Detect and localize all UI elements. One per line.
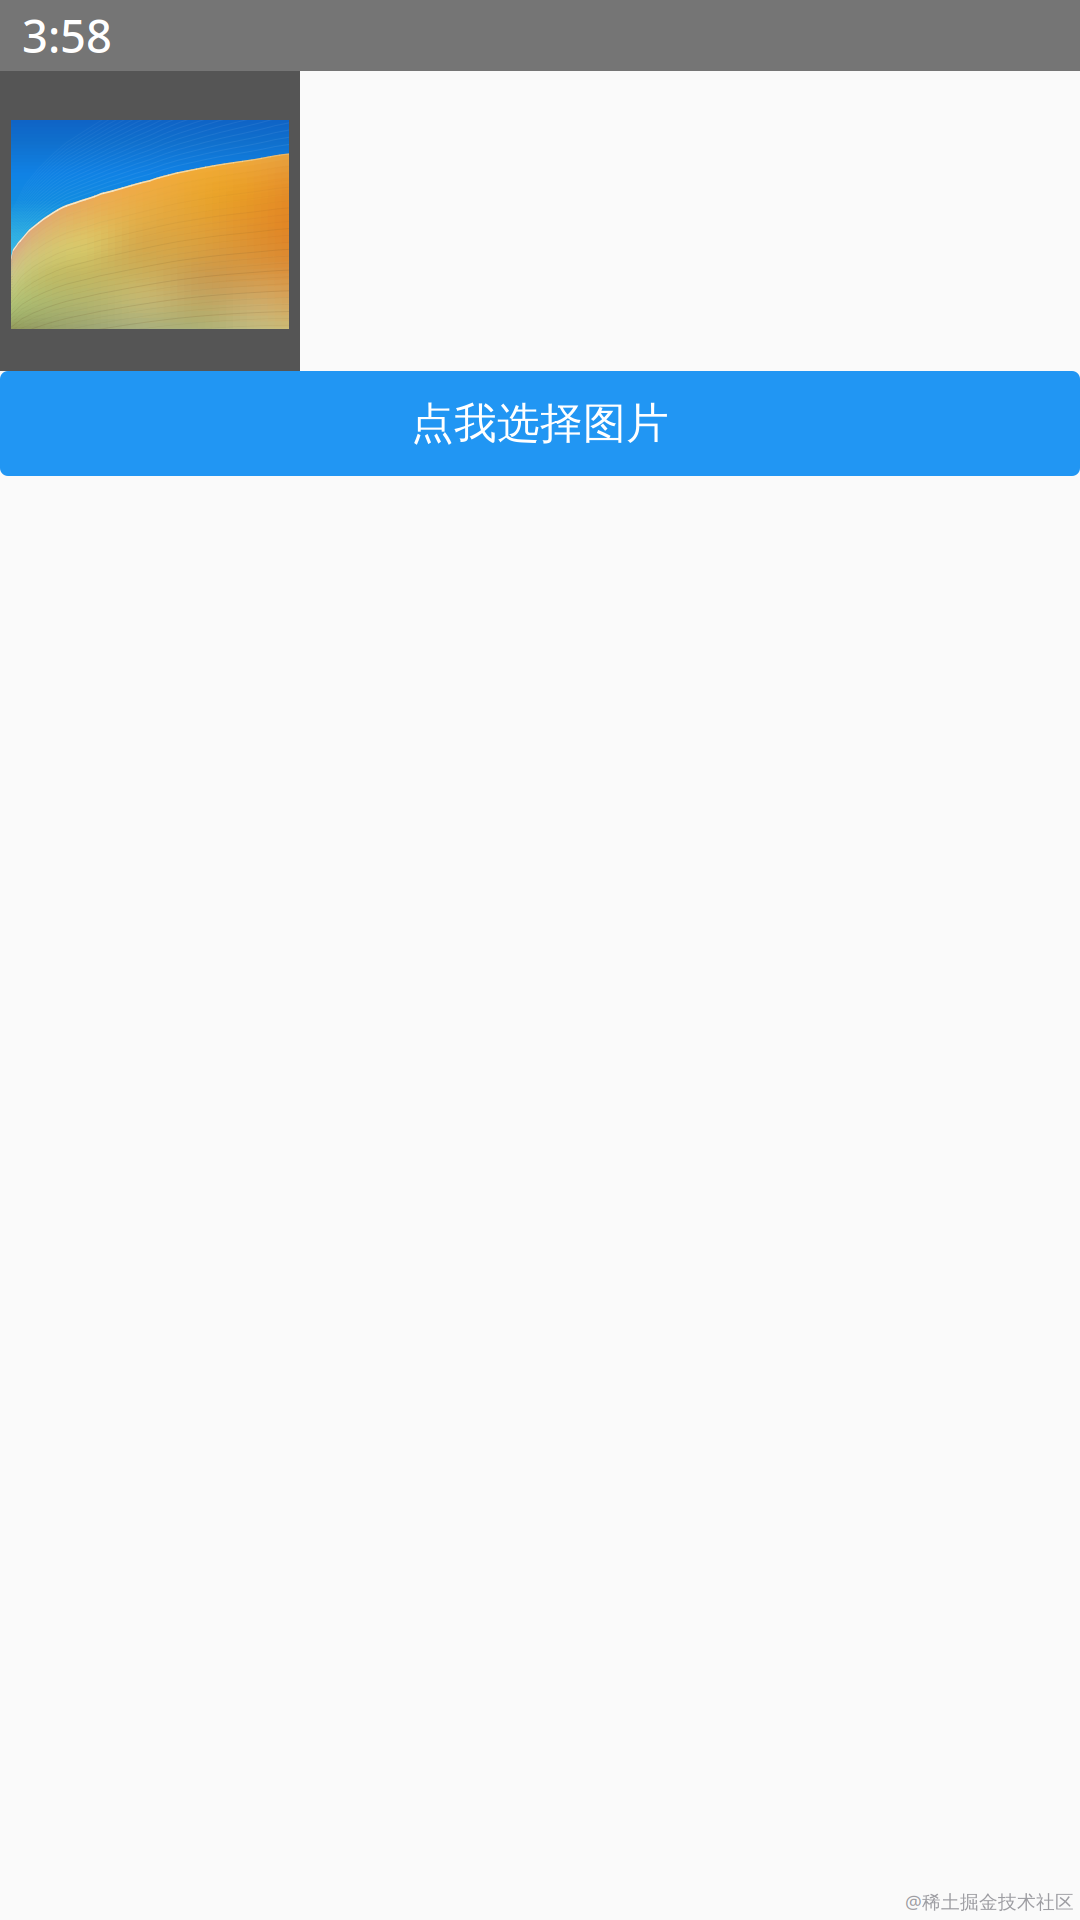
staticText: 3:58: [22, 5, 112, 66]
button[interactable]: 点我选择图片: [0, 371, 1080, 476]
staticText: 点我选择图片: [411, 397, 669, 450]
staticText: @稀土掘金技术社区: [905, 1889, 1074, 1914]
